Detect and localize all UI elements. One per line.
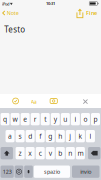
button[interactable]: spazio bbox=[34, 165, 70, 178]
staticText: Aa bbox=[31, 98, 37, 105]
button[interactable]: invio bbox=[72, 165, 99, 178]
button[interactable]: v bbox=[46, 147, 55, 159]
staticText: b bbox=[58, 149, 62, 158]
button[interactable]: Hide keyboard bbox=[79, 95, 92, 109]
button[interactable]: z bbox=[16, 147, 25, 159]
button[interactable]: h bbox=[56, 130, 65, 142]
button[interactable]: w bbox=[11, 113, 20, 125]
button[interactable]: a bbox=[5, 130, 14, 142]
staticText: p bbox=[93, 115, 97, 124]
staticText: c bbox=[39, 149, 42, 158]
button[interactable]: p bbox=[91, 113, 100, 125]
button[interactable]: d bbox=[26, 130, 35, 142]
staticText: m bbox=[77, 149, 83, 158]
staticText: q bbox=[3, 115, 7, 124]
staticText: f bbox=[39, 132, 41, 141]
staticText: 123 bbox=[3, 168, 12, 175]
button[interactable]: Text format bbox=[27, 95, 40, 109]
button[interactable] bbox=[1, 147, 13, 159]
button[interactable]: i bbox=[71, 113, 80, 125]
staticText: iPod bbox=[2, 1, 9, 7]
button[interactable]: y bbox=[51, 113, 60, 125]
button[interactable]: g bbox=[46, 130, 55, 142]
staticText: spazio bbox=[44, 168, 60, 175]
button[interactable]: b bbox=[56, 147, 65, 159]
button[interactable] bbox=[88, 147, 100, 159]
staticText: h bbox=[58, 132, 62, 141]
staticText: Testo bbox=[4, 24, 25, 35]
button[interactable]: Share bbox=[74, 7, 85, 19]
button[interactable]: x bbox=[26, 147, 35, 159]
staticText: invio bbox=[80, 168, 91, 175]
button[interactable] bbox=[15, 165, 23, 178]
button[interactable]: o bbox=[81, 113, 90, 125]
button[interactable]: n bbox=[66, 147, 75, 159]
button[interactable]: t bbox=[41, 113, 50, 125]
button[interactable]: k bbox=[76, 130, 85, 142]
button[interactable]: s bbox=[16, 130, 25, 142]
button[interactable]: c bbox=[36, 147, 45, 159]
button[interactable]: Note bbox=[0, 7, 21, 19]
button[interactable]: r bbox=[31, 113, 40, 125]
staticText: r bbox=[34, 115, 37, 124]
button[interactable]: f bbox=[36, 130, 45, 142]
button[interactable]: Fine bbox=[85, 7, 98, 19]
button[interactable]: m bbox=[76, 147, 85, 159]
staticText: s bbox=[19, 132, 22, 141]
staticText: e bbox=[23, 115, 27, 124]
button[interactable]: e bbox=[21, 113, 30, 125]
button[interactable]: q bbox=[1, 113, 10, 125]
staticText: z bbox=[19, 149, 22, 158]
button[interactable]: l bbox=[86, 130, 95, 142]
button[interactable]: Checklist bbox=[9, 94, 22, 108]
staticText: 10:31 bbox=[46, 1, 55, 6]
staticText: a bbox=[8, 132, 12, 141]
staticText: Note bbox=[7, 9, 19, 17]
staticText: u bbox=[63, 115, 67, 124]
staticText: l bbox=[89, 132, 91, 141]
staticText: d bbox=[28, 132, 32, 141]
staticText: i bbox=[74, 115, 76, 124]
button[interactable]: 123 bbox=[1, 165, 14, 178]
staticText: x bbox=[28, 149, 32, 158]
staticText: k bbox=[78, 132, 82, 141]
staticText: Fine bbox=[86, 9, 97, 17]
button[interactable]: j bbox=[66, 130, 75, 142]
staticText: v bbox=[49, 149, 52, 158]
button[interactable]: Camera bbox=[47, 94, 60, 108]
staticText: y bbox=[54, 115, 57, 124]
staticText: t bbox=[44, 115, 46, 124]
staticText: o bbox=[83, 115, 87, 124]
staticText: n bbox=[68, 149, 72, 158]
button[interactable]: u bbox=[61, 113, 70, 125]
staticText: g bbox=[48, 132, 52, 141]
staticText: w bbox=[13, 115, 18, 124]
staticText: j bbox=[69, 132, 71, 141]
button[interactable] bbox=[24, 165, 33, 178]
